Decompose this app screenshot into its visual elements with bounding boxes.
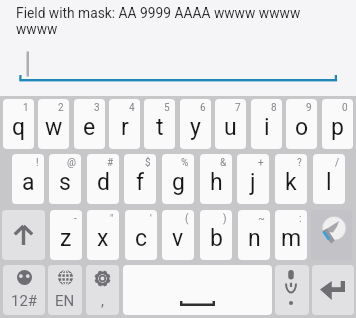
button[interactable]: 0 [322, 99, 353, 149]
staticText: w [45, 114, 63, 141]
button[interactable]: / [313, 154, 345, 204]
staticText: + [258, 157, 264, 169]
button[interactable]: ) [200, 210, 232, 260]
staticText: i [264, 114, 270, 141]
staticText: 1 [23, 102, 29, 114]
button[interactable]: + [237, 154, 269, 204]
button[interactable]: : [275, 210, 307, 260]
button[interactable]: 3 [74, 99, 105, 149]
staticText: c [135, 225, 148, 252]
button[interactable]: @ [49, 154, 81, 204]
button[interactable]: $ [124, 154, 156, 204]
staticText: 3 [94, 102, 100, 114]
staticText: o [295, 114, 309, 141]
button[interactable]: ~ [238, 210, 270, 260]
staticText: " [110, 213, 114, 225]
staticText: ( [185, 213, 189, 225]
button[interactable]: Backspace [311, 210, 352, 260]
staticText: u [224, 114, 237, 141]
staticText: x [97, 225, 109, 252]
button[interactable]: & [200, 154, 232, 204]
staticText: 12# [11, 292, 38, 310]
staticText: 7 [235, 102, 241, 114]
staticText: 6 [200, 102, 206, 114]
button[interactable]: Space [123, 265, 272, 315]
staticText: n [248, 225, 261, 252]
staticText: ) [223, 213, 227, 225]
button[interactable]: 2 [38, 99, 69, 149]
staticText: % [181, 157, 189, 169]
staticText: z [60, 225, 72, 252]
staticText: r [121, 114, 129, 141]
staticText: 9 [306, 102, 312, 114]
staticText: 0 [342, 102, 348, 114]
button[interactable]: Change language [48, 265, 82, 315]
button[interactable]: 8 [251, 99, 282, 149]
button[interactable]: Enter [312, 265, 354, 315]
staticText: v [172, 225, 184, 252]
button[interactable]: Symbols [3, 265, 45, 315]
button[interactable]: 7 [215, 99, 246, 149]
button[interactable]: ( [162, 210, 194, 260]
button[interactable]: 4 [109, 99, 140, 149]
staticText: g [172, 169, 185, 196]
staticText: & [220, 157, 227, 169]
staticText: l [326, 169, 332, 196]
staticText: e [83, 114, 96, 141]
button[interactable] [0, 48, 356, 84]
button[interactable]: 9 [286, 99, 317, 149]
staticText: 2 [58, 102, 64, 114]
staticText: f [136, 169, 144, 196]
button[interactable]: % [162, 154, 194, 204]
button[interactable]: - [50, 210, 82, 260]
button[interactable]: Shift [2, 210, 45, 260]
button[interactable]: ? [275, 154, 307, 204]
staticText: k [285, 169, 297, 196]
staticText: : [299, 213, 302, 225]
staticText: s [59, 169, 71, 196]
button[interactable]: " [87, 210, 119, 260]
staticText: y [190, 114, 201, 141]
staticText: p [331, 114, 344, 141]
staticText: t [156, 114, 164, 141]
staticText: h [210, 169, 223, 196]
button[interactable]: # [87, 154, 119, 204]
staticText: $ [145, 157, 151, 169]
button[interactable]: Voice input [275, 265, 309, 315]
staticText: , [101, 292, 104, 310]
button[interactable]: 5 [144, 99, 175, 149]
button[interactable]: 6 [180, 99, 211, 149]
staticText: d [97, 169, 110, 196]
staticText: EN [55, 292, 75, 310]
button[interactable]: 1 [3, 99, 34, 149]
staticText: b [210, 225, 223, 252]
staticText: - [74, 213, 77, 225]
staticText: Field with mask: AA 9999 AAAA wwww wwww … [16, 5, 326, 38]
staticText: a [22, 169, 35, 196]
staticText: q [12, 114, 26, 141]
staticText: m [281, 225, 302, 252]
staticText: / [335, 157, 340, 169]
staticText: ! [36, 157, 39, 169]
staticText: ~ [258, 213, 265, 225]
staticText: # [107, 157, 114, 169]
button[interactable]: ! [12, 154, 44, 204]
button[interactable]: ' [125, 210, 157, 260]
button[interactable]: Settings [86, 265, 119, 315]
staticText: ' [150, 213, 152, 225]
staticText: @ [67, 157, 76, 169]
staticText: 4 [129, 102, 135, 114]
staticText: 8 [271, 102, 277, 114]
staticText: 5 [164, 102, 170, 114]
staticText: j [250, 169, 256, 196]
staticText: ? [297, 157, 302, 169]
